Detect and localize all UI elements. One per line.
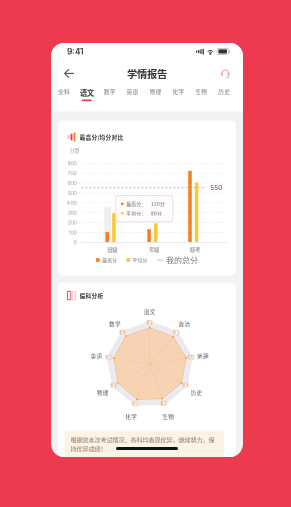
staticText: 9:41	[67, 46, 83, 56]
staticText: 700	[67, 170, 76, 176]
button[interactable]: 英语	[121, 87, 144, 104]
staticText: 语文	[144, 307, 156, 315]
staticText: 120分	[151, 200, 165, 207]
staticText: 化学	[172, 87, 184, 95]
button[interactable]: 数学	[98, 87, 121, 104]
button[interactable]: 全科	[52, 87, 75, 104]
staticText: 83	[106, 355, 112, 360]
staticText: 550	[210, 184, 222, 191]
button[interactable]: 化学	[167, 87, 190, 104]
staticText: 根据您本次考试情况，各科均表现优异，继续努力，保持优异成绩！	[70, 435, 214, 453]
staticText: 数学	[104, 87, 116, 95]
staticText: 500	[67, 190, 76, 196]
button[interactable]: 生物	[190, 87, 213, 104]
button[interactable]: 返回	[51, 60, 83, 86]
staticText: 英语	[127, 87, 139, 95]
staticText: 政治	[178, 320, 190, 328]
staticText: 最高分/均分对比	[79, 133, 123, 141]
staticText: 600	[67, 180, 76, 186]
button[interactable]: 物理	[144, 87, 167, 104]
staticText: 学情报告	[127, 66, 167, 81]
staticText: 83	[173, 330, 179, 335]
staticText: 85	[147, 320, 153, 325]
staticText: 数学	[109, 320, 121, 328]
staticText: 历史	[191, 388, 203, 396]
staticText: 化学	[125, 412, 137, 420]
staticText: 分数	[69, 146, 79, 154]
staticText: 最高分：	[126, 200, 146, 207]
staticText: 300	[67, 209, 76, 216]
staticText: 最高分	[102, 256, 117, 263]
staticText: 84	[111, 383, 117, 388]
staticText: 我的总分	[166, 254, 198, 266]
staticText: 80分	[151, 210, 162, 217]
staticText: 84	[183, 383, 189, 388]
staticText: 生物	[195, 87, 207, 95]
staticText: 86	[188, 355, 194, 360]
staticText: 偏科分析	[79, 291, 103, 300]
staticText: 800	[67, 160, 76, 167]
staticText: 400	[66, 199, 76, 206]
staticText: 200	[67, 219, 76, 226]
staticText: 82	[161, 401, 167, 406]
staticText: 语文	[80, 87, 94, 98]
staticText: 平均分：	[126, 210, 146, 217]
staticText: 班级	[107, 245, 117, 253]
staticText: 联考	[190, 245, 200, 253]
staticText: 86	[120, 330, 126, 335]
staticText: 物理	[97, 388, 109, 396]
button[interactable]: 客服	[211, 61, 243, 86]
staticText: 年级	[149, 245, 159, 253]
staticText: 平均分	[133, 256, 148, 263]
button[interactable]: 历史	[213, 87, 236, 104]
staticText: 物理	[149, 87, 161, 95]
staticText: 生物	[162, 412, 174, 420]
staticText: 85	[132, 401, 138, 407]
staticText: 0	[73, 239, 76, 246]
button[interactable]: 语文	[75, 87, 98, 104]
staticText: 英语	[90, 352, 102, 360]
staticText: 100	[68, 229, 76, 236]
staticText: 地理	[197, 352, 209, 360]
staticText: 历史	[218, 87, 230, 95]
staticText: 全科	[58, 87, 70, 95]
